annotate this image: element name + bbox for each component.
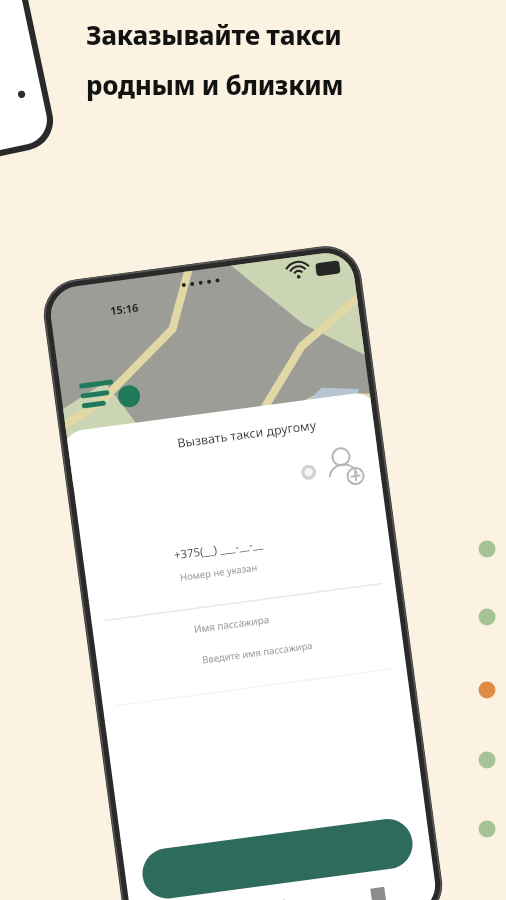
- staticText: Номер не указан: [179, 561, 258, 584]
- staticText: 15:16: [109, 299, 140, 318]
- staticText: Заказывайте такси родным и близким: [86, 17, 344, 103]
- staticText: Имя пассажира: [193, 612, 270, 636]
- staticText: Готово: [350, 799, 398, 823]
- staticText: +375(__) ___-__-__: [173, 536, 264, 563]
- staticText: Вызвать такси другому: [176, 416, 317, 452]
- button[interactable]: Вызвать такси другому: [0, 0, 506, 900]
- staticText: Введите имя пассажира: [201, 639, 314, 666]
